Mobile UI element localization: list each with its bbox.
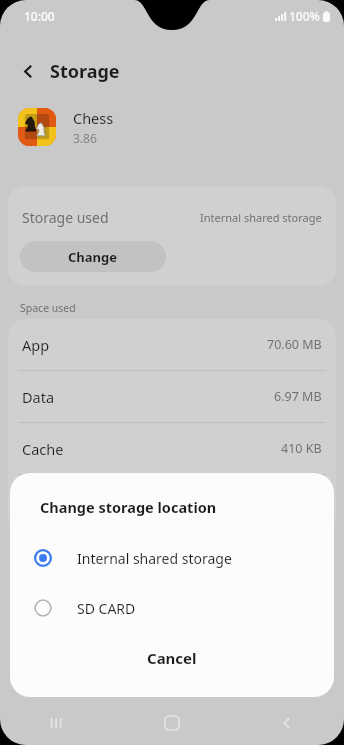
button[interactable]: Cache (22, 423, 322, 474)
staticText: 3.86 (73, 130, 97, 146)
button[interactable]: Cancel (10, 641, 334, 675)
button[interactable]: Back (12, 55, 44, 87)
staticText: Internal shared storage (200, 210, 322, 225)
button[interactable]: Back (229, 700, 344, 745)
staticText: Space used (20, 301, 76, 315)
staticText: SD CARD (77, 599, 136, 618)
staticText: Data (22, 387, 55, 407)
staticText: Change (68, 248, 118, 266)
button[interactable]: Clear cache (172, 475, 336, 537)
staticText: 10:00 (24, 8, 55, 24)
button[interactable]: Home (114, 700, 229, 745)
staticText: 70.60 MB (267, 336, 322, 353)
staticText: 410 KB (281, 440, 322, 457)
staticText: 100% (289, 8, 320, 24)
button[interactable]: Change (20, 241, 166, 272)
staticText: Chess (73, 108, 114, 128)
staticText: Storage used (22, 208, 109, 227)
staticText: Cancel (147, 648, 197, 668)
staticText: App (22, 335, 50, 355)
staticText: 6.97 MB (274, 388, 322, 405)
button[interactable]: Recent apps (0, 700, 114, 745)
button[interactable]: SD CARD (10, 583, 334, 633)
button[interactable]: Clear data (8, 475, 172, 537)
button[interactable]: Internal shared storage (10, 533, 334, 583)
staticText: Cache (22, 439, 64, 459)
staticText: Clear data (59, 497, 122, 515)
staticText: Internal shared storage (77, 549, 232, 568)
staticText: Change storage location (40, 497, 217, 517)
button[interactable]: Data (22, 371, 322, 422)
button[interactable]: App (22, 319, 322, 370)
staticText: Storage (50, 59, 120, 84)
